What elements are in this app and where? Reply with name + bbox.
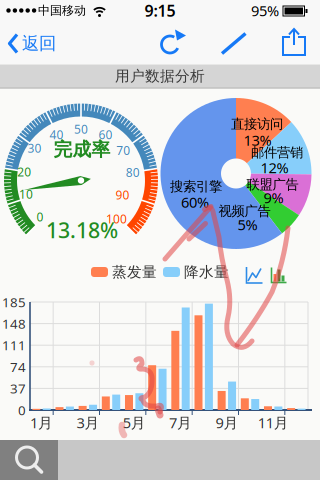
- staticText: 80: [126, 164, 140, 180]
- staticText: 0: [37, 209, 44, 225]
- staticText: 20: [17, 164, 31, 180]
- staticText: 40: [50, 127, 64, 142]
- staticText: 用户数据分析: [115, 67, 205, 85]
- staticText: 95%: [251, 1, 279, 20]
- button[interactable]: Zoom: [0, 440, 58, 480]
- staticText: 10: [19, 186, 33, 202]
- button[interactable]: Bar chart: [270, 266, 288, 284]
- staticText: 9:15: [144, 0, 175, 21]
- staticText: 12%: [260, 158, 288, 177]
- button[interactable]: Line chart: [244, 266, 263, 285]
- staticText: 蒸发量: [112, 263, 157, 281]
- staticText: 9月: [215, 413, 238, 432]
- staticText: 50: [74, 121, 88, 137]
- staticText: 9%: [263, 188, 283, 207]
- staticText: 13%: [243, 130, 271, 150]
- button[interactable]: Share: [274, 28, 314, 58]
- staticText: 5月: [123, 413, 146, 432]
- staticText: 11月: [258, 413, 289, 432]
- staticText: 完成率: [53, 138, 110, 161]
- button[interactable]: 蒸发量: [91, 263, 157, 281]
- staticText: 联盟广告: [246, 176, 298, 193]
- staticText: 60%: [181, 192, 209, 212]
- button[interactable]: 返回: [0, 0, 62, 44]
- staticText: 3月: [76, 413, 99, 432]
- staticText: 降水量: [184, 263, 229, 281]
- staticText: 搜索引擎: [170, 178, 222, 195]
- staticText: 30: [27, 140, 41, 156]
- button[interactable]: 降水量: [163, 263, 229, 281]
- staticText: 中国移动: [38, 3, 86, 18]
- staticText: 185: [2, 293, 26, 311]
- staticText: 37: [10, 379, 26, 397]
- button[interactable]: Refresh: [155, 21, 195, 65]
- staticText: 13.18%: [46, 216, 118, 244]
- staticText: 邮件营销: [251, 144, 303, 161]
- staticText: 直接访问: [231, 116, 283, 132]
- staticText: 70: [116, 142, 130, 158]
- button[interactable]: Draw: [211, 22, 255, 64]
- staticText: 1月: [30, 413, 53, 432]
- staticText: 0: [18, 401, 26, 419]
- staticText: 90: [115, 187, 129, 203]
- staticText: 100: [106, 211, 127, 227]
- staticText: 5%: [237, 215, 257, 234]
- staticText: 74: [10, 358, 26, 376]
- staticText: 返回: [22, 33, 56, 54]
- staticText: 7月: [169, 413, 192, 432]
- staticText: 60: [98, 127, 112, 142]
- staticText: 148: [2, 315, 26, 332]
- staticText: 视频广告: [218, 203, 270, 219]
- staticText: 111: [2, 336, 26, 354]
